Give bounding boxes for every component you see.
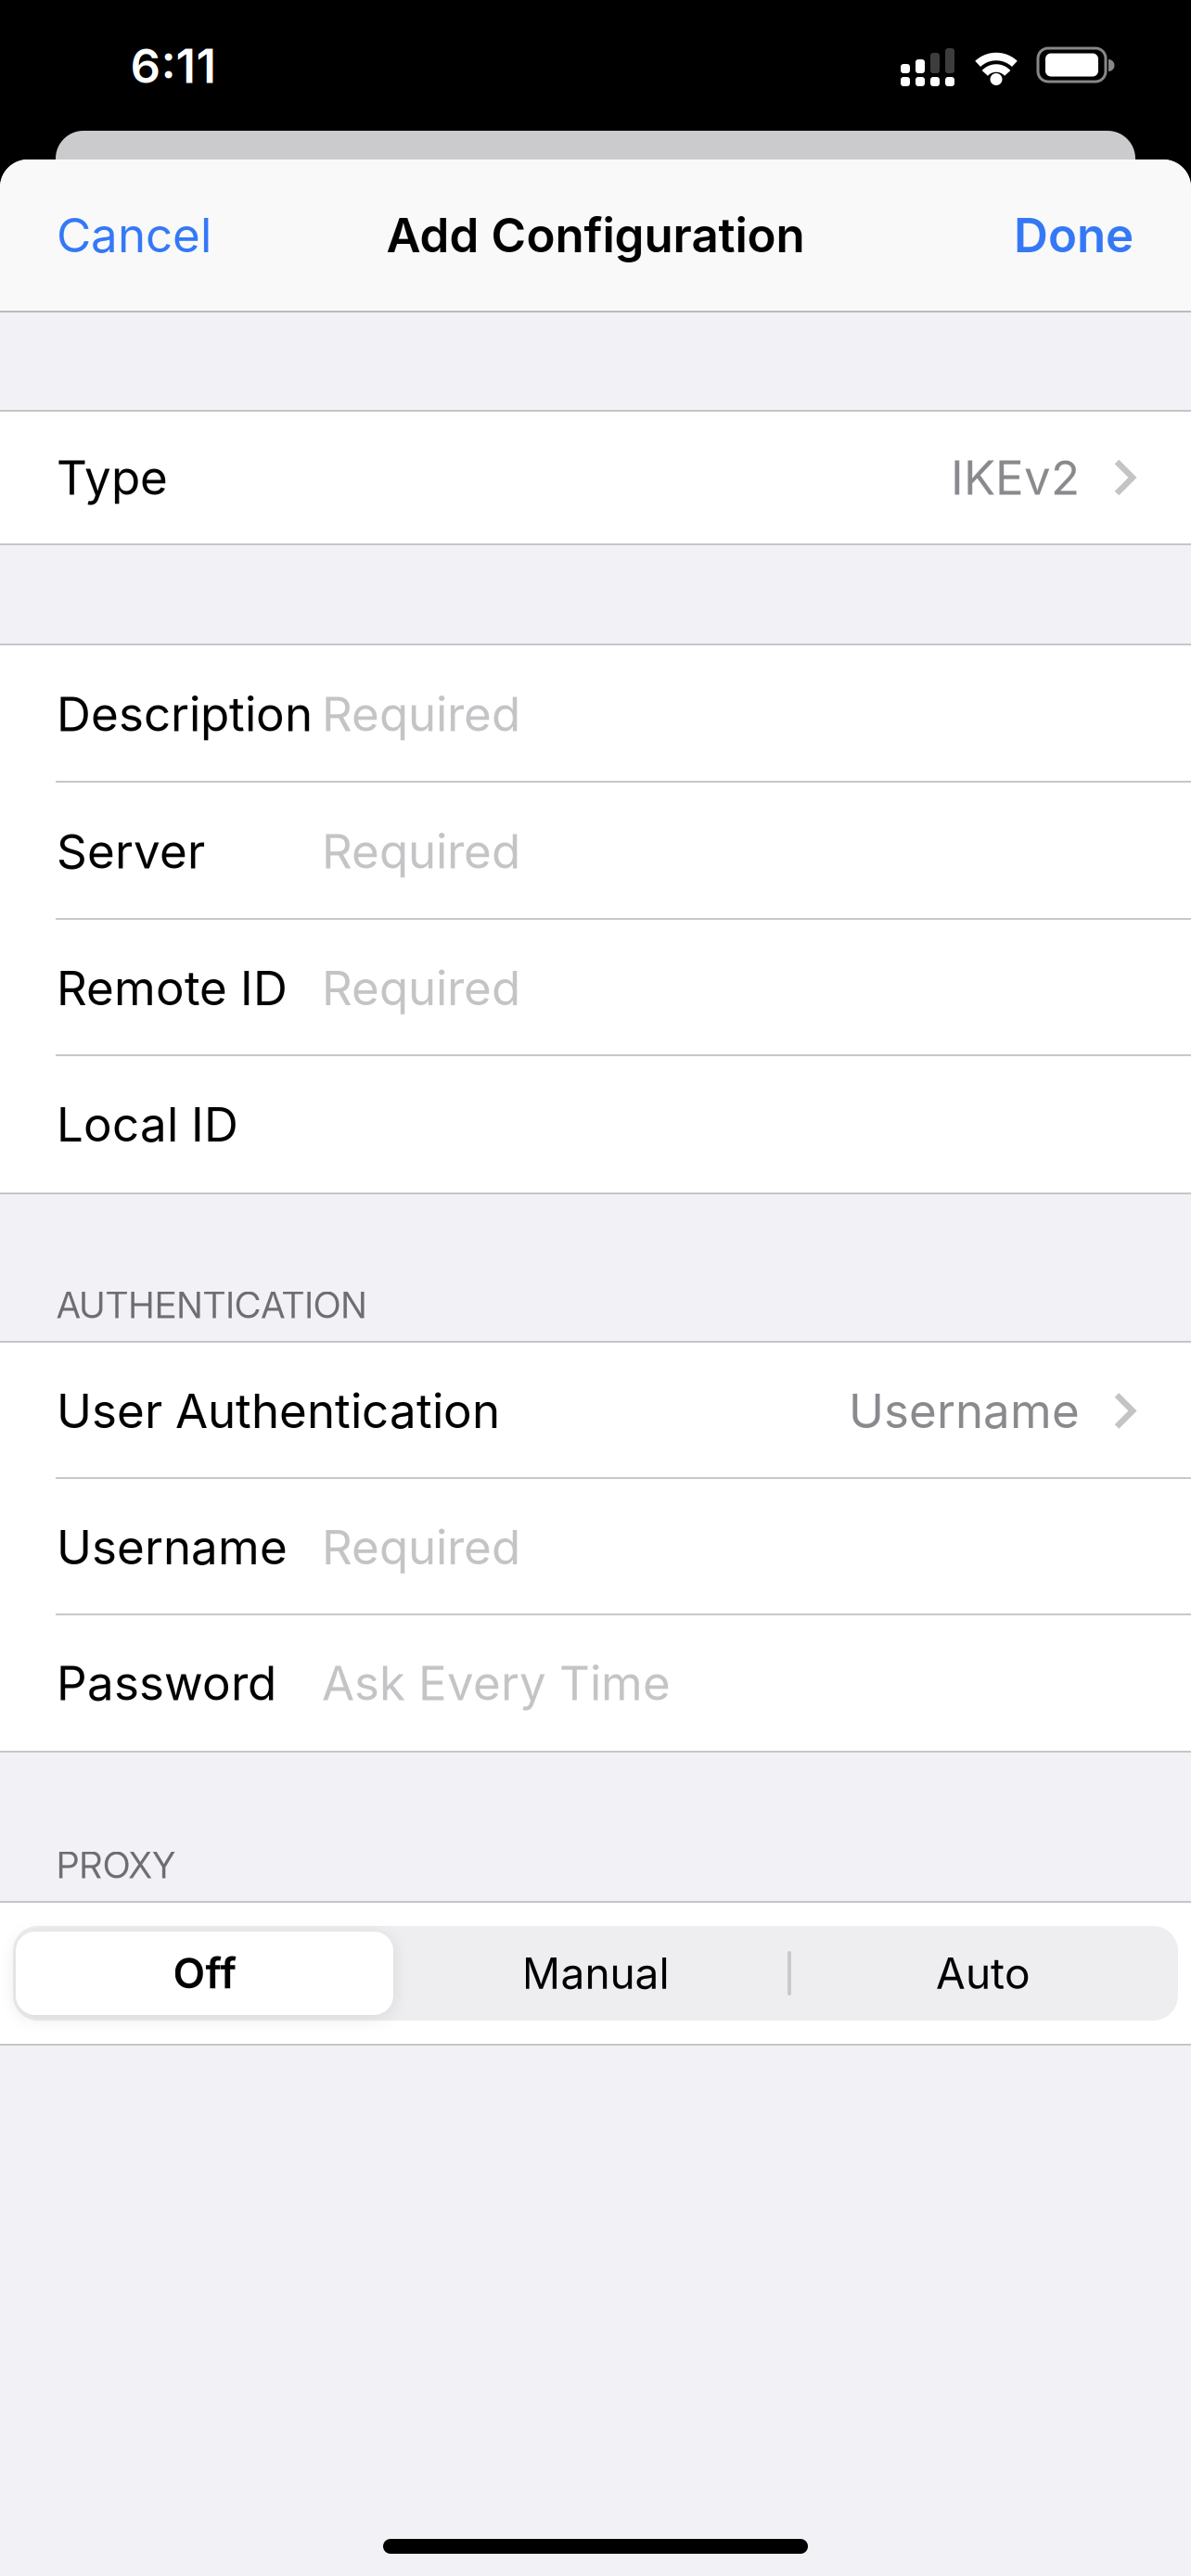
button[interactable]: Password [0,1615,1191,1751]
staticText: Done [1014,206,1133,264]
staticText: Description [57,685,313,743]
staticText: Remote ID [57,959,288,1017]
staticText: PROXY [57,1843,175,1887]
staticText: Server [57,823,205,880]
staticText: Ask Every Time [322,1654,671,1712]
button[interactable]: Manual [438,1932,753,2015]
staticText: Type [57,449,168,506]
staticText: Required [322,823,520,880]
button[interactable]: Description [0,645,1191,783]
staticText: Auto [936,1947,1031,1999]
staticText: User Authentication [57,1382,500,1439]
staticText: Required [322,685,520,743]
button[interactable]: Username [0,1479,1191,1615]
staticText: Password [57,1654,276,1712]
staticText: Required [322,959,520,1017]
staticText: AUTHENTICATION [57,1283,367,1327]
button[interactable]: Server [0,783,1191,920]
staticText: 6:11 [130,37,217,94]
staticText: Cancel [57,206,211,264]
button[interactable]: User Authentication [0,1343,1191,1479]
button[interactable]: Done [1014,206,1133,264]
staticText: Username [849,1382,1080,1439]
staticText: Add Configuration [386,206,805,264]
button[interactable]: Cancel [57,206,211,264]
button[interactable]: Type [0,412,1191,543]
button[interactable]: Auto [826,1932,1141,2015]
button[interactable]: Off [16,1932,393,2015]
staticText: IKEv2 [951,449,1080,506]
staticText: Off [173,1948,236,1998]
staticText: Username [57,1519,288,1576]
staticText: Required [322,1519,520,1576]
staticText: Manual [522,1947,669,1999]
button[interactable]: Local ID [0,1056,1191,1192]
staticText: Local ID [57,1096,238,1153]
button[interactable]: Remote ID [0,920,1191,1056]
